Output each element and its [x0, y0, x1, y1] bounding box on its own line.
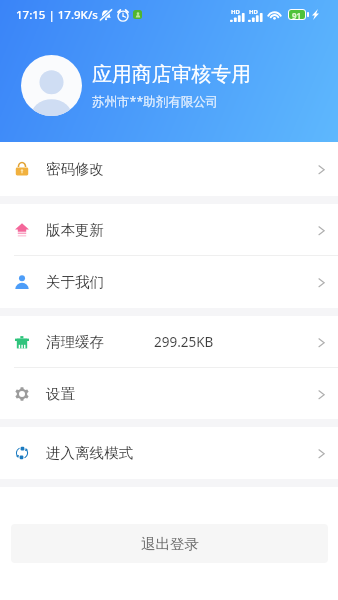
- button[interactable]: 版本更新: [0, 204, 338, 255]
- staticText: 关于我们: [46, 273, 104, 291]
- staticText: 退出登录: [141, 535, 199, 553]
- staticText: 版本更新: [46, 221, 104, 239]
- staticText: HD: [231, 8, 240, 16]
- button[interactable]: 进入离线模式: [0, 427, 338, 479]
- staticText: 应用商店审核专用: [92, 62, 252, 87]
- staticText: 密码修改: [46, 160, 104, 178]
- staticText: 91: [292, 10, 302, 19]
- button[interactable]: 退出登录: [11, 524, 328, 563]
- staticText: 进入离线模式: [46, 444, 133, 462]
- staticText: 299.25KB: [154, 333, 214, 351]
- staticText: 设置: [46, 385, 75, 403]
- staticText: 清理缓存: [46, 333, 104, 351]
- staticText: 苏州市**助剂有限公司: [92, 93, 219, 110]
- staticText: 17:15 | 17.9K/s: [16, 7, 98, 23]
- staticText: HD: [249, 8, 258, 16]
- button[interactable]: 密码修改: [0, 142, 338, 196]
- button[interactable]: 设置: [0, 368, 338, 419]
- button[interactable]: 关于我们: [0, 256, 338, 308]
- button[interactable]: 清理缓存: [0, 316, 338, 367]
